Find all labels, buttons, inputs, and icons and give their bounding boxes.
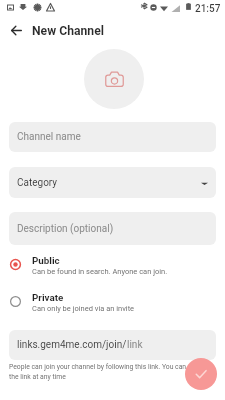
button[interactable]: Back [5, 19, 28, 42]
button[interactable]: Description (optional) [9, 212, 216, 245]
staticText: Channel name [17, 131, 81, 143]
button[interactable]: Add channel photo [84, 49, 144, 109]
staticText: Can be found in search. Anyone can join. [32, 267, 168, 276]
button[interactable]: Public [7, 255, 212, 283]
staticText: Private [32, 292, 64, 303]
staticText: Can only be joined via an invite [32, 304, 135, 313]
button[interactable]: Category [9, 167, 216, 198]
staticText: link [127, 339, 143, 351]
staticText: Category [17, 177, 58, 189]
button[interactable]: Private [7, 292, 212, 320]
button[interactable]: Confirm [185, 358, 217, 390]
staticText: links.gem4me.com/join/ [17, 339, 127, 351]
staticText: People can join your channel by followin… [9, 363, 204, 381]
staticText: Description (optional) [17, 223, 114, 235]
staticText: 21:57 [195, 3, 221, 15]
button[interactable]: Channel name [9, 122, 216, 152]
button[interactable]: links.gem4me.com/join/ [9, 330, 216, 360]
staticText: Public [32, 255, 60, 266]
staticText: New Channel [32, 24, 105, 38]
